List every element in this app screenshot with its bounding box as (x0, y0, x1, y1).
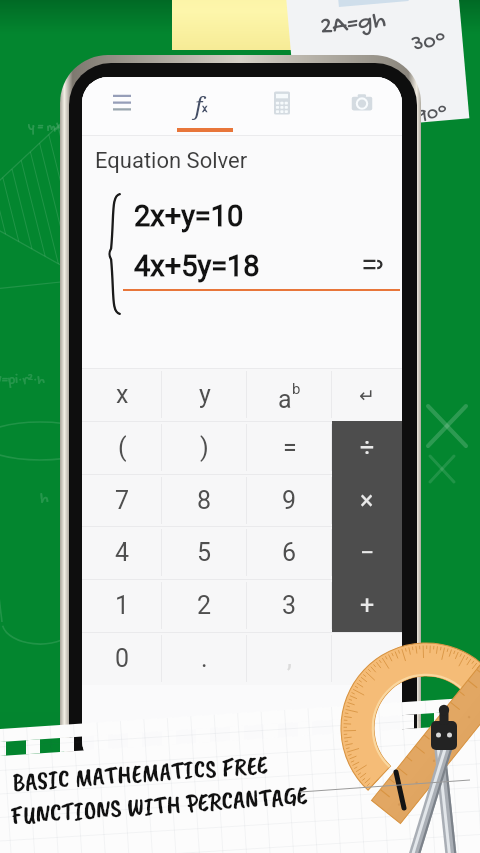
button[interactable]: 7 (82, 474, 162, 527)
button[interactable]: 0 (82, 632, 162, 685)
staticText: BASIC MATHEMATICS FREE (11, 748, 269, 799)
button[interactable]: ↵ (332, 368, 402, 421)
staticText: 2A=gh (319, 7, 388, 42)
staticText: ) (200, 433, 209, 462)
staticText: 90° (415, 101, 449, 129)
button[interactable]: ) (162, 421, 247, 474)
button[interactable]: 1 (82, 579, 162, 632)
button[interactable] (332, 632, 402, 685)
staticText: Equation Solver (95, 148, 248, 174)
staticText: + (360, 591, 375, 620)
button[interactable]: ( (82, 421, 162, 474)
staticText: x (202, 102, 208, 115)
staticText: 6 (282, 538, 297, 567)
staticText: , (287, 644, 292, 673)
staticText: V=pi·r²·h (0, 372, 45, 389)
staticText: ( (118, 433, 127, 462)
button[interactable]: 2 (162, 579, 247, 632)
staticText: − (360, 538, 375, 567)
staticText: 0 (115, 644, 130, 673)
staticText: 4x+5y=18 (134, 249, 260, 283)
staticText: 9 (282, 486, 297, 515)
staticText: ÷ (360, 433, 375, 462)
button[interactable]: × (332, 474, 402, 527)
button[interactable]: − (332, 526, 402, 579)
staticText: 5 (197, 538, 212, 567)
staticText: y (199, 380, 211, 409)
button[interactable]: a (247, 368, 332, 421)
staticText: a (278, 385, 292, 414)
staticText: 30° (410, 28, 448, 58)
button[interactable]: 8 (162, 474, 247, 527)
button[interactable]: Functions (162, 77, 242, 129)
staticText: 1 (115, 591, 130, 620)
staticText: 2 (197, 591, 212, 620)
button[interactable]: 9 (247, 474, 332, 527)
button[interactable]: Swap equations (363, 257, 383, 272)
button[interactable]: 5 (162, 526, 247, 579)
button[interactable]: . (162, 632, 247, 685)
button[interactable]: ÷ (332, 421, 402, 474)
button[interactable]: = (247, 421, 332, 474)
staticText: × (360, 486, 374, 515)
staticText: y = mx (28, 120, 63, 135)
button[interactable]: y (162, 368, 247, 421)
staticText: 3 (282, 591, 297, 620)
button[interactable]: + (332, 579, 402, 632)
staticText: b (292, 380, 301, 398)
staticText: 2x+y=10 (134, 199, 244, 233)
staticText: h (40, 490, 49, 509)
button[interactable]: 4 (82, 526, 162, 579)
staticText: x (116, 380, 129, 409)
button[interactable]: Camera (322, 77, 402, 129)
staticText: FUNCTIONS WITH PERCANTAGE (9, 779, 309, 832)
staticText: ↵ (359, 384, 375, 406)
staticText: 8 (197, 486, 212, 515)
staticText: . (201, 644, 208, 673)
button[interactable]: Calculator (242, 77, 322, 129)
staticText: 4 (115, 538, 130, 567)
staticText: 7 (115, 486, 130, 515)
button[interactable]: x (82, 368, 162, 421)
staticText: f (195, 89, 203, 120)
button[interactable]: Menu (82, 77, 162, 129)
staticText: = (283, 433, 297, 462)
button[interactable]: 3 (247, 579, 332, 632)
button[interactable]: 6 (247, 526, 332, 579)
